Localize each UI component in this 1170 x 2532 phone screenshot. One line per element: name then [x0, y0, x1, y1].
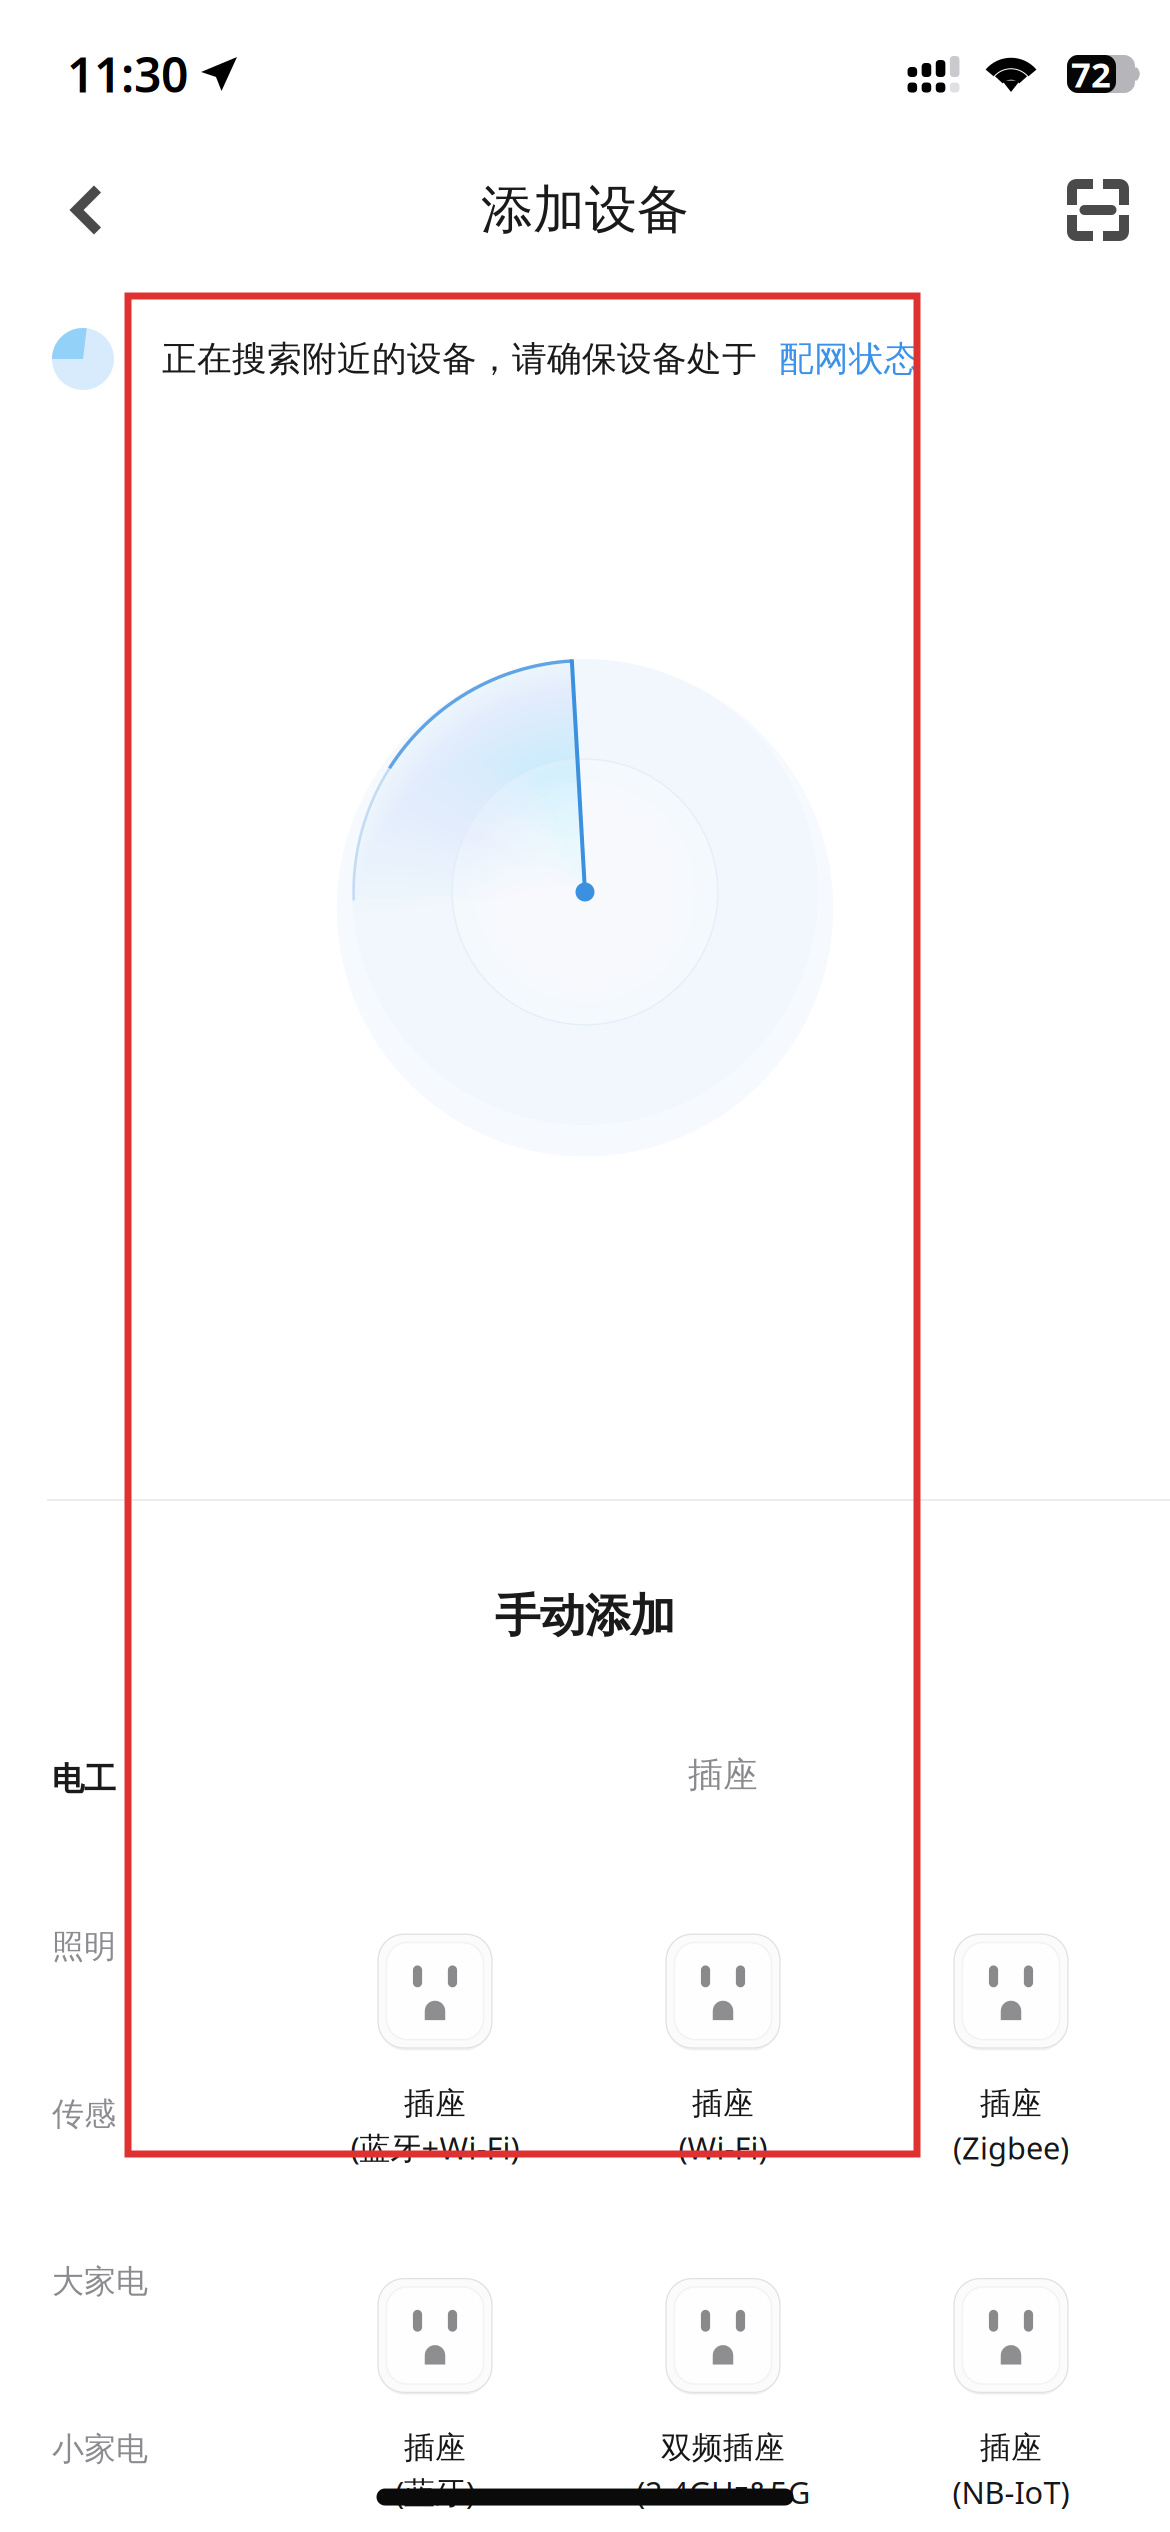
staticText: 配网状态 [779, 338, 919, 380]
staticText: 插座 [980, 2085, 1042, 2122]
button[interactable]: 传感 [52, 2030, 164, 2198]
staticText: 小家电 [52, 2429, 148, 2469]
staticText: 传感 [52, 2094, 116, 2134]
button[interactable]: 插座 [867, 1934, 1155, 2168]
button[interactable]: 插座 [291, 2278, 579, 2512]
button[interactable]: 双频插座 [579, 2278, 867, 2512]
button[interactable]: 照明 [52, 1863, 164, 2030]
staticText: 插座 [692, 2085, 754, 2122]
button[interactable]: 大家电 [52, 2198, 164, 2365]
staticText: 插座 [404, 2085, 466, 2122]
staticText: (Zigbee) [953, 2127, 1069, 2168]
staticText: (NB-IoT) [952, 2472, 1069, 2512]
staticText: 插座 [688, 1754, 758, 1796]
staticText: (蓝牙) [395, 2472, 475, 2512]
staticText: (Wi-Fi) [678, 2127, 767, 2168]
button[interactable]: 插座 [291, 1934, 579, 2168]
staticText: 插座 [404, 2429, 466, 2467]
button[interactable]: 电工 [52, 1695, 164, 1863]
staticText: 大家电 [52, 2262, 148, 2301]
staticText: (蓝牙+Wi-Fi) [350, 2127, 519, 2168]
staticText: 双频插座 [661, 2429, 785, 2467]
button[interactable]: 配网状态 [779, 338, 919, 380]
button[interactable]: 小家电 [52, 2365, 164, 2532]
button[interactable]: 插座 [579, 1934, 867, 2168]
staticText: 11:30 [67, 42, 188, 106]
staticText: 72 [1071, 51, 1111, 97]
button[interactable]: Back [39, 162, 135, 258]
staticText: 电工 [52, 1759, 116, 1799]
staticText: (2.4GHz&5G [636, 2472, 810, 2512]
staticText: 正在搜索附近的设备，请确保设备处于 [162, 338, 757, 380]
button[interactable]: Scan [1050, 162, 1146, 258]
staticText: 照明 [52, 1927, 116, 1966]
button[interactable]: 插座 [867, 2278, 1155, 2512]
staticText: 添加设备 [481, 178, 689, 242]
staticText: 插座 [980, 2429, 1042, 2467]
staticText: 手动添加 [495, 1588, 675, 1644]
